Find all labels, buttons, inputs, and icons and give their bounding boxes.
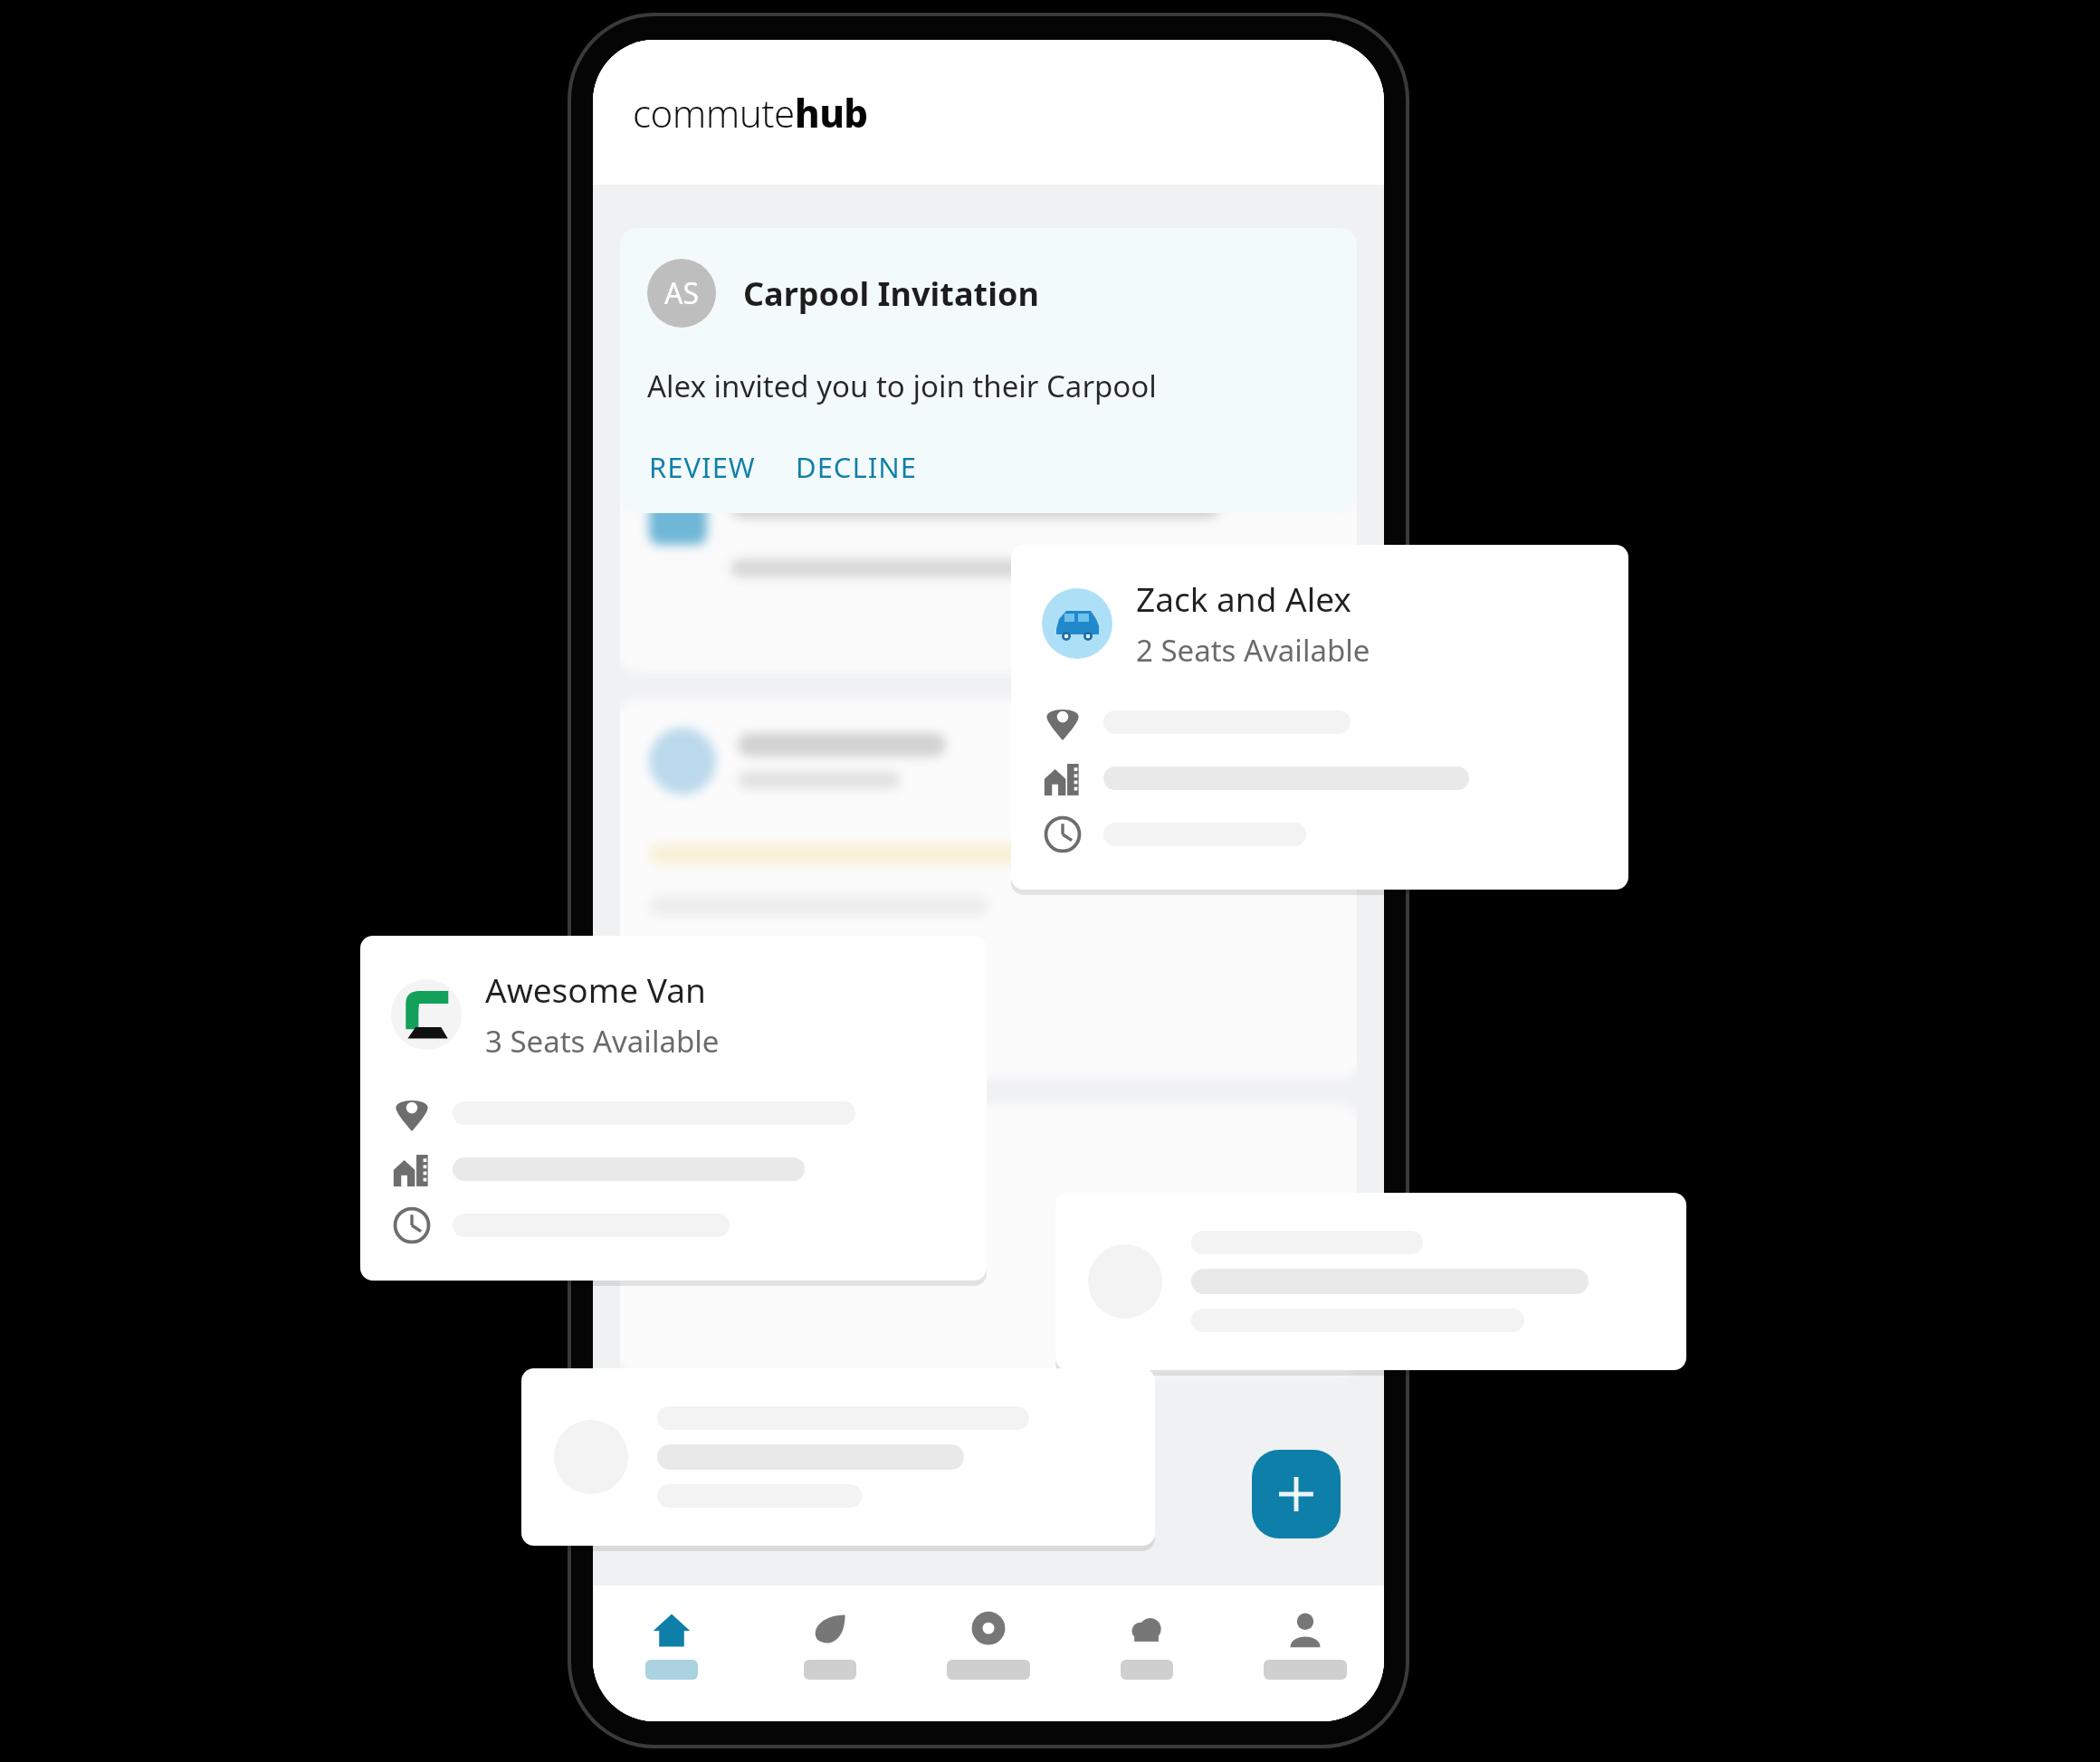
button[interactable]: Zack and Alex [1011,545,1628,890]
button[interactable]: AS [620,228,1357,513]
staticText: Zack and Alex [1136,576,1351,621]
button[interactable] [593,1586,750,1721]
button[interactable]: commute [633,87,868,138]
staticText: Alex invited you to join their Carpool [647,366,1157,406]
staticText: Carpool Invitation [743,271,1039,316]
button[interactable]: DECLINE [794,444,920,490]
staticText: REVIEW [649,448,756,486]
button[interactable] [1055,1193,1686,1370]
staticText: AS [664,273,700,313]
staticText: 3 Seats Available [485,1021,720,1062]
button[interactable]: REVIEW [647,444,758,490]
button[interactable] [521,1368,1155,1546]
button[interactable]: Add carpool [1252,1450,1341,1538]
staticText: DECLINE [796,448,918,486]
button[interactable]: Awesome Van [360,936,987,1281]
button[interactable] [1067,1586,1226,1721]
staticText: commute [633,87,795,138]
staticText: 2 Seats Available [1136,630,1370,671]
button[interactable] [1226,1586,1384,1721]
staticText: Awesome Van [485,967,706,1012]
staticText: hub [795,87,868,138]
button[interactable] [750,1586,909,1721]
button[interactable] [909,1586,1067,1721]
